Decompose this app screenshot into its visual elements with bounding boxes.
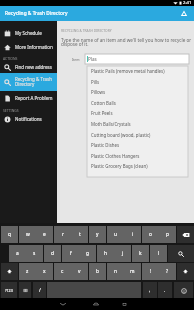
button[interactable]: i [124,226,141,243]
button[interactable]: Notifications [0,112,57,126]
staticText: Plas [88,56,97,62]
button[interactable]: Shift [1,263,18,280]
button[interactable]: Find new address [0,60,57,74]
button[interactable]: d [44,245,61,262]
button[interactable]: ? [159,263,176,280]
staticText: Pillows [91,89,106,95]
button[interactable]: x [36,263,53,280]
button[interactable]: c [54,263,71,280]
staticText: y [96,231,99,238]
button[interactable]: Recents [117,298,131,310]
button[interactable]: b [89,263,106,280]
staticText: Plastic Grocery Bags (clean) [91,163,148,169]
button[interactable]: Recycling & Trash Directory [0,73,57,91]
staticText: r [62,231,64,238]
button[interactable]: q [1,226,18,243]
staticText: h [104,250,107,257]
button[interactable]: Plas [85,54,189,64]
staticText: w [26,231,30,238]
staticText: Recycling & Trash Directory [5,10,68,17]
staticText: Plastic Clothes Hangers [91,153,140,159]
button[interactable]: o [142,226,159,243]
button[interactable]: Plastic Clothes Hangers [87,150,188,161]
button[interactable]: ! [142,263,159,280]
staticText: More Information [15,44,53,50]
staticText: Find new address [15,64,52,70]
button[interactable]: r [54,226,71,243]
button[interactable]: Report A Problem [0,91,57,105]
button[interactable]: Search [168,245,194,262]
staticText: ACTIONS [3,56,18,61]
staticText: / [39,287,41,294]
button[interactable]: f [62,245,79,262]
staticText: , [149,287,151,294]
staticText: Plastic Dishes [91,142,120,148]
staticText: Type the name of an item and we'll tell … [61,37,192,43]
button[interactable]: Back [56,298,70,310]
button[interactable]: n [107,263,124,280]
button[interactable]: v [71,263,88,280]
button[interactable]: Plastic Dishes [87,139,188,150]
staticText: Plastic Pails (remove metal handles) [91,68,165,74]
button[interactable]: , [143,282,157,299]
button[interactable]: u [107,226,124,243]
button[interactable]: e [36,226,53,243]
button[interactable]: Plastic Pails (remove metal handles) [87,65,188,76]
staticText: n [114,268,117,275]
button[interactable]: y [89,226,106,243]
staticText: e [43,231,46,238]
button[interactable]: Cotton Balls [87,97,188,108]
button[interactable]: Fruit Peels [87,107,188,118]
staticText: Item: [72,57,81,61]
button[interactable]: Language [19,282,31,299]
staticText: ? [166,268,169,275]
button[interactable]: More Information [0,40,57,54]
staticText: 2:41 [183,0,192,6]
button[interactable]: k [132,245,149,262]
button[interactable]: . [158,282,172,299]
button[interactable]: m [124,263,141,280]
button[interactable]: ?123 [1,282,17,299]
staticText: x [43,268,46,275]
button[interactable]: t [71,226,88,243]
button[interactable]: g [79,245,96,262]
staticText: ?123 [5,288,13,293]
staticText: Cutting board (wood, plastic) [91,132,151,138]
button[interactable]: Plastic Grocery Bags (clean) [87,160,188,171]
button[interactable]: p [159,226,176,243]
button[interactable]: l [150,245,167,262]
button[interactable]: My Schedule [0,26,57,40]
button[interactable]: a [9,245,26,262]
button[interactable]: Home [89,298,103,310]
staticText: i [132,231,134,238]
staticText: RECYCLING & TRASH DIRECTORY [61,28,112,32]
staticText: v [78,268,81,275]
button[interactable]: Recycling information [177,7,190,20]
button[interactable]: Moth Balls/Crystals [87,118,188,129]
staticText: . [164,287,166,294]
staticText: Pills [91,79,100,85]
button[interactable]: Shift [177,263,194,280]
staticText: m [130,268,135,275]
staticText: SETTINGS [3,108,19,113]
button[interactable] [47,282,141,299]
button[interactable]: / [33,282,46,299]
button[interactable]: h [97,245,114,262]
button[interactable]: z [19,263,36,280]
button[interactable]: Emoji [174,282,193,299]
button[interactable]: Pills [87,76,188,87]
staticText: g [86,250,89,257]
staticText: Moth Balls/Crystals [91,121,131,127]
button[interactable]: Backspace [177,226,194,243]
button[interactable]: w [19,226,36,243]
staticText: q [8,231,11,238]
button[interactable]: Cutting board (wood, plastic) [87,129,188,140]
staticText: a [16,250,19,257]
staticText: Notifications [15,116,42,122]
button[interactable]: s [26,245,43,262]
staticText: k [139,250,142,257]
button[interactable]: Pillows [87,86,188,97]
staticText: z [26,268,29,275]
button[interactable]: j [114,245,131,262]
staticText: ! [150,268,152,275]
